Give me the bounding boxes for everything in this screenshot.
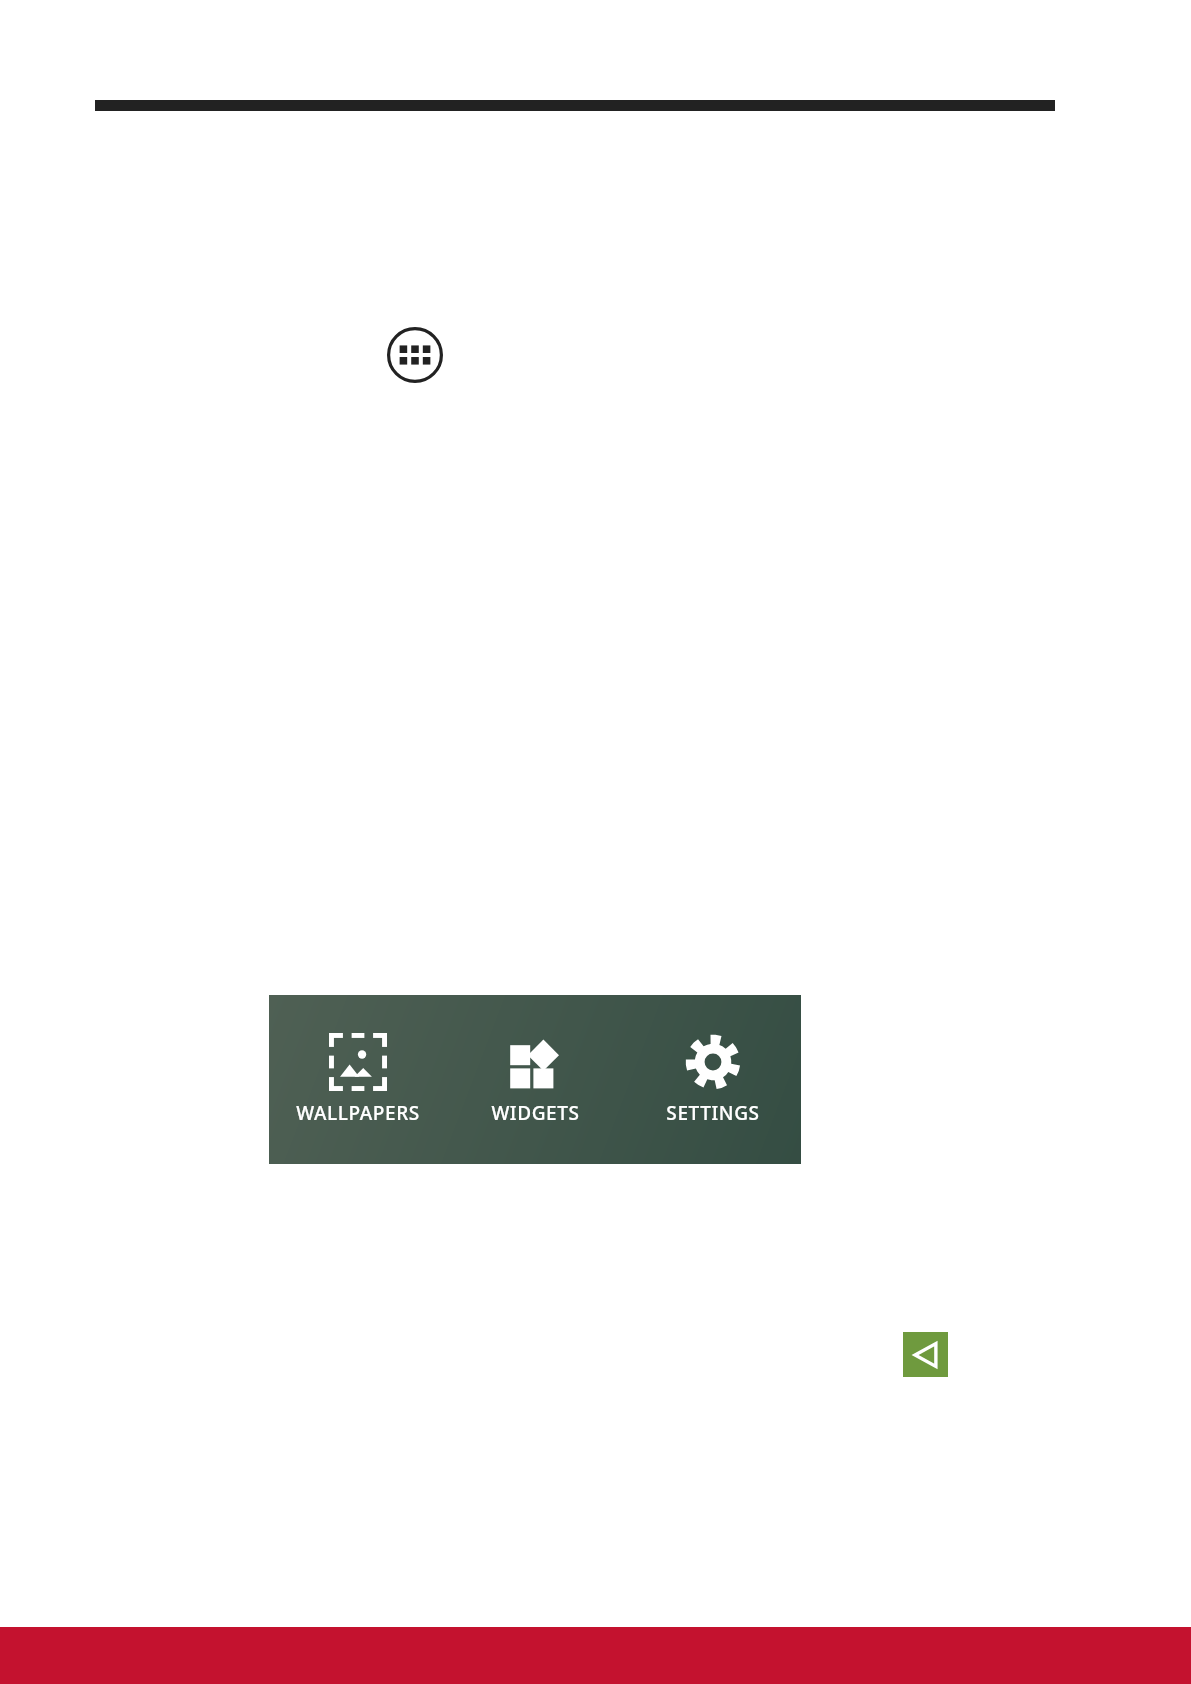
- button[interactable]: Back: [903, 1332, 948, 1377]
- staticText: WIDGETS: [491, 1100, 580, 1126]
- staticText: WALLPAPERS: [296, 1100, 420, 1126]
- button[interactable]: WIDGETS: [447, 995, 624, 1164]
- button[interactable]: WALLPAPERS: [269, 995, 447, 1164]
- staticText: SETTINGS: [666, 1100, 760, 1126]
- button[interactable]: Apps: [387, 327, 443, 383]
- button[interactable]: SETTINGS: [624, 995, 801, 1164]
